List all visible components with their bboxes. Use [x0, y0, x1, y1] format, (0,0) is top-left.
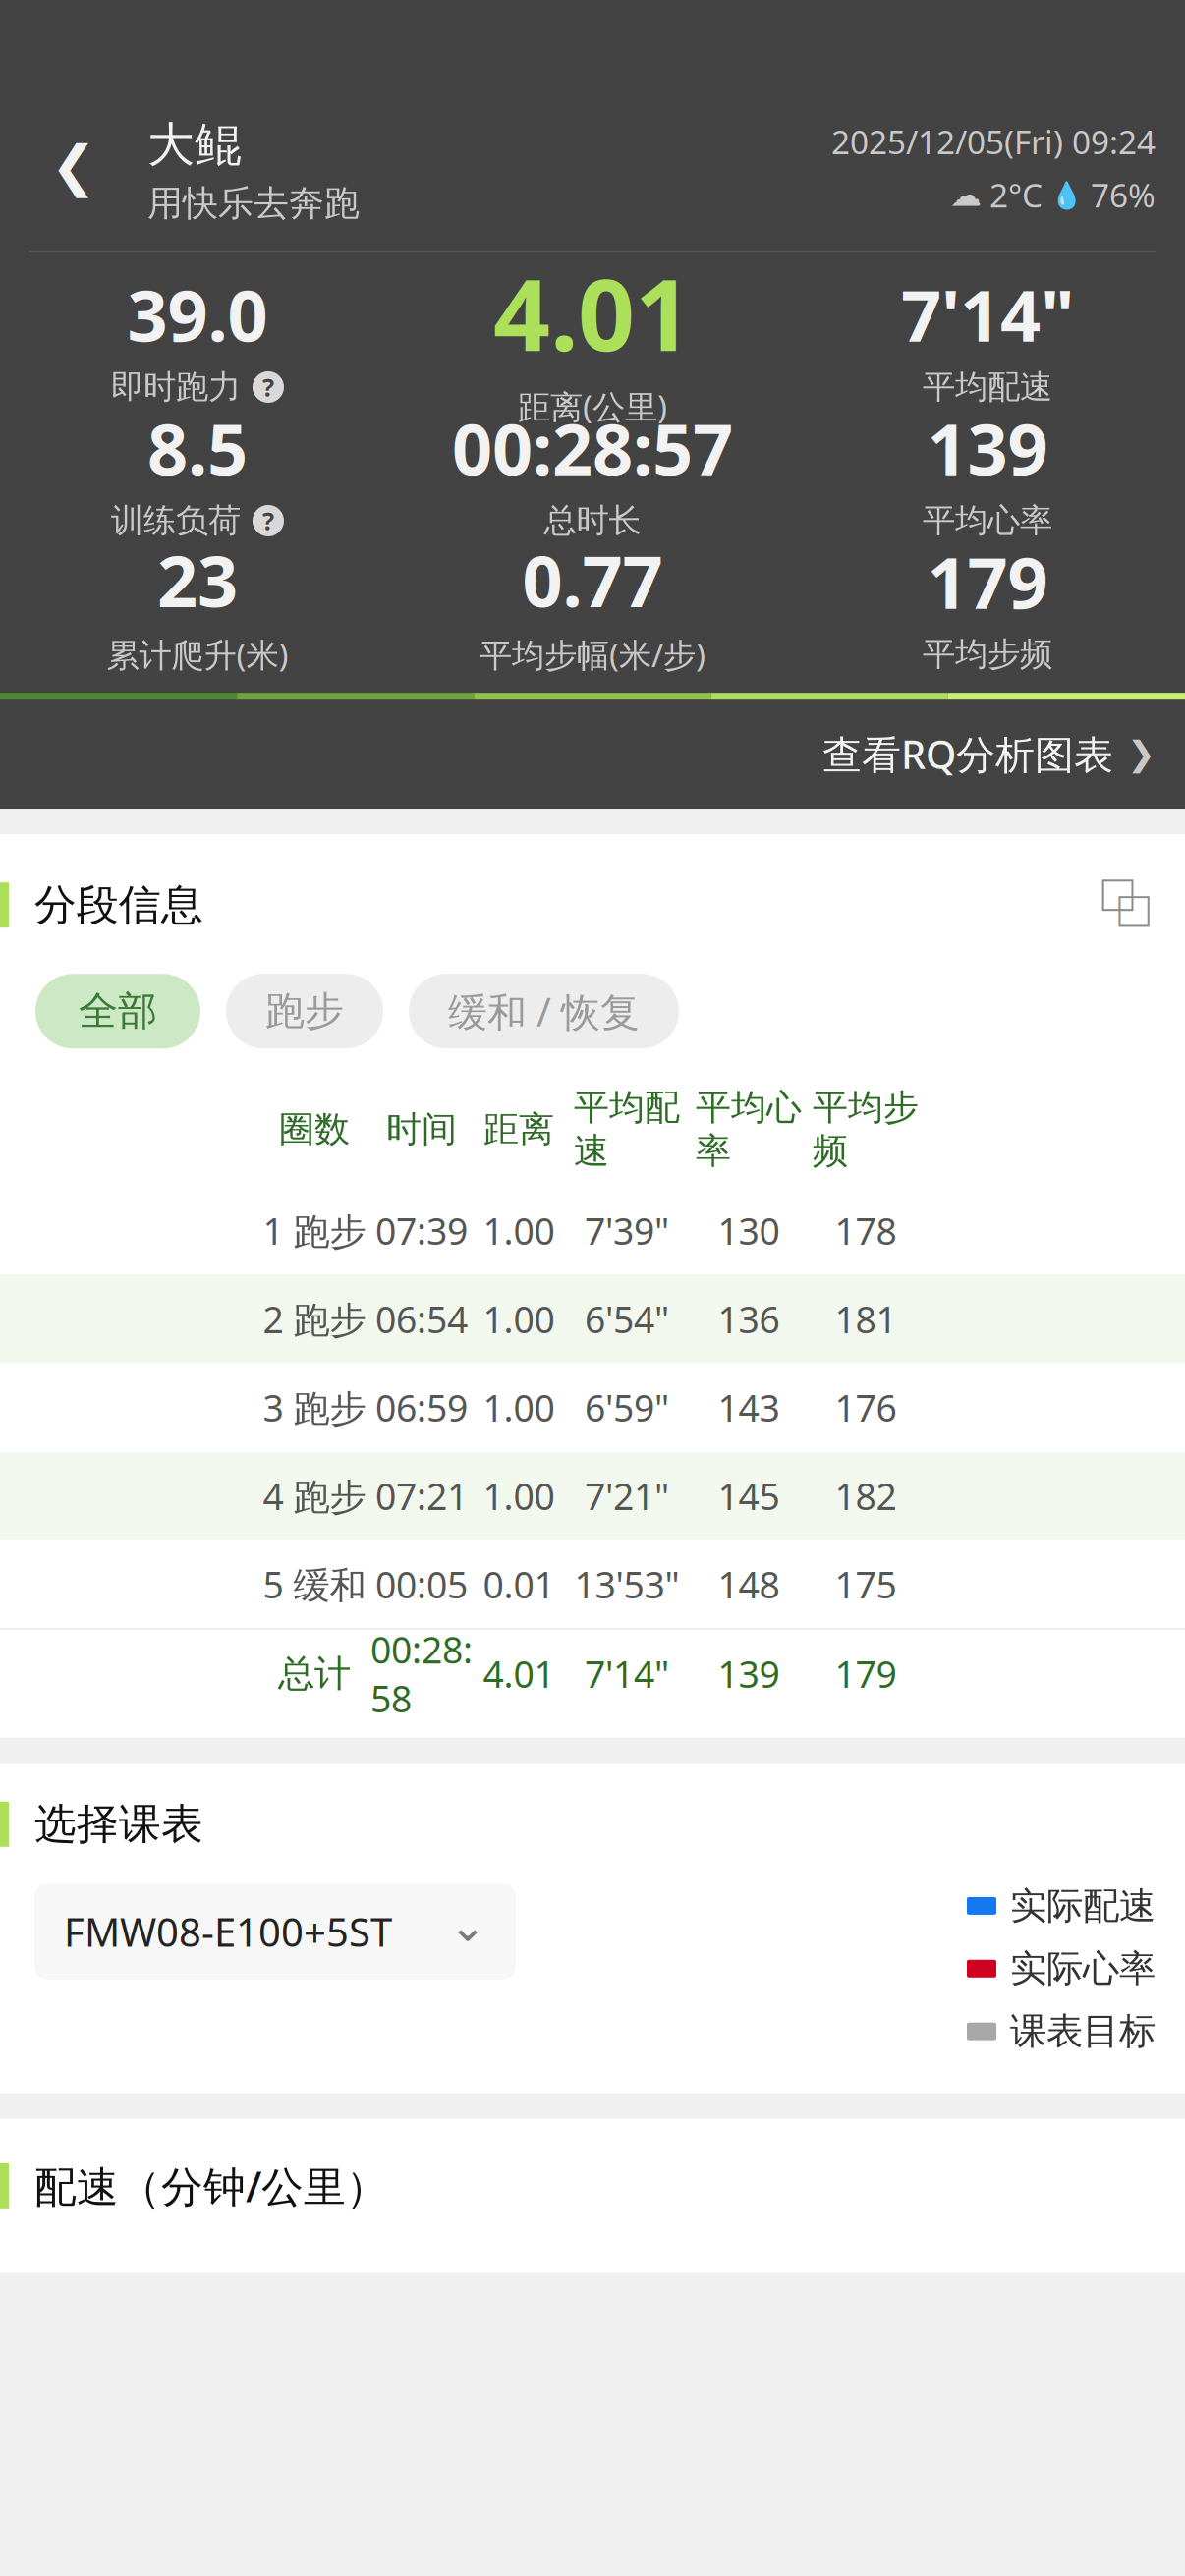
staticText: 用快乐去奔跑	[147, 182, 360, 225]
staticText: 7'14"	[585, 1649, 669, 1698]
staticText: 平均心率	[923, 501, 1052, 541]
button[interactable]: 跑步	[226, 974, 383, 1048]
staticText: ☁	[950, 177, 982, 213]
staticText: 5 缓和	[263, 1560, 366, 1609]
staticText: 分段信息	[34, 879, 203, 931]
staticText: 圈数	[279, 1108, 350, 1151]
staticText: ⧉	[1097, 872, 1155, 938]
staticText: 选择课表	[34, 1798, 203, 1850]
staticText: 配速（分钟/公里）	[34, 2158, 388, 2214]
staticText: 23	[157, 533, 238, 627]
staticText: 00:28:58	[370, 1625, 473, 1722]
staticText: 总时长	[544, 501, 641, 541]
staticText: ?	[262, 371, 274, 404]
button[interactable]: FMW08-E100+5ST	[34, 1883, 516, 1980]
staticText: 平均配速	[574, 1086, 680, 1173]
staticText: 7'21"	[585, 1472, 669, 1520]
staticText: 平均步频	[923, 634, 1052, 674]
staticText: 实际配速	[1010, 1883, 1156, 1928]
staticText: 缓和 / 恢复	[448, 985, 640, 1037]
staticText: 3 跑步	[263, 1383, 366, 1432]
staticText: 6'54"	[585, 1295, 669, 1343]
staticText: 总计	[278, 1651, 351, 1696]
staticText: 07:39	[375, 1206, 468, 1255]
staticText: 07:21	[375, 1472, 468, 1520]
staticText: 8.5	[147, 401, 248, 495]
staticText: 即时跑力	[111, 367, 241, 407]
staticText: 06:54	[375, 1295, 468, 1343]
staticText: 175	[835, 1560, 897, 1609]
staticText: 139	[927, 401, 1048, 495]
staticText: 0.01	[483, 1560, 555, 1609]
staticText: 课表目标	[1010, 2009, 1156, 2054]
staticText: 136	[718, 1295, 780, 1343]
staticText: 2°C	[989, 173, 1043, 217]
staticText: 7'14"	[901, 267, 1074, 361]
staticText: 距离	[483, 1108, 554, 1151]
staticText: ⌄	[449, 1900, 486, 1951]
staticText: 130	[718, 1206, 780, 1255]
button[interactable]: 切换视图	[1087, 870, 1165, 940]
staticText: 145	[718, 1472, 780, 1520]
staticText: 6'59"	[585, 1383, 669, 1432]
staticText: 143	[718, 1383, 780, 1432]
staticText: ?	[262, 504, 274, 537]
staticText: 2 跑步	[263, 1295, 366, 1343]
staticText: 00:05	[375, 1560, 468, 1609]
staticText: 139	[718, 1649, 780, 1698]
staticText: 平均心率	[696, 1086, 802, 1173]
button[interactable]: 查看RQ分析图表	[0, 699, 1185, 809]
staticText: 训练负荷	[111, 501, 241, 541]
staticText: 179	[927, 534, 1048, 628]
staticText: 距离(公里)	[518, 384, 667, 428]
staticText: 全部	[79, 987, 157, 1035]
staticText: 176	[835, 1383, 897, 1432]
staticText: 76%	[1091, 173, 1156, 217]
staticText: 4 跑步	[263, 1472, 366, 1520]
staticText: 1 跑步	[263, 1206, 366, 1255]
staticText: 查看RQ分析图表	[822, 728, 1113, 780]
button[interactable]: 说明	[253, 505, 284, 536]
staticText: 大鲲	[147, 116, 242, 174]
staticText: 1.00	[483, 1206, 555, 1255]
staticText: 💧	[1050, 180, 1083, 210]
button[interactable]: 缓和 / 恢复	[409, 974, 679, 1048]
button[interactable]: Back	[20, 112, 128, 220]
button[interactable]: 全部	[35, 974, 200, 1048]
staticText: 1.00	[483, 1472, 555, 1520]
staticText: 时间	[386, 1108, 457, 1151]
staticText: 实际心率	[1010, 1946, 1156, 1991]
staticText: 06:59	[375, 1383, 468, 1432]
staticText: 13'53"	[574, 1560, 679, 1609]
staticText: 跑步	[265, 987, 344, 1035]
staticText: 00:28:57	[452, 401, 733, 495]
staticText: ❯	[1127, 734, 1156, 773]
staticText: 148	[718, 1560, 780, 1609]
staticText: 平均步频	[813, 1086, 919, 1173]
staticText: 0.77	[522, 533, 663, 627]
staticText: 182	[835, 1472, 897, 1520]
staticText: 累计爬升(米)	[107, 633, 288, 676]
staticText: 2025/12/05(Fri) 09:24	[831, 120, 1156, 163]
staticText: ❮	[51, 135, 97, 197]
staticText: 1.00	[483, 1383, 555, 1432]
staticText: 4.01	[493, 246, 692, 379]
staticText: 179	[835, 1649, 897, 1698]
staticText: 7'39"	[585, 1206, 669, 1255]
staticText: 平均步幅(米/步)	[480, 633, 705, 676]
staticText: 181	[835, 1295, 897, 1343]
staticText: 平均配速	[923, 367, 1052, 407]
staticText: 178	[835, 1206, 897, 1255]
staticText: 4.01	[483, 1649, 555, 1698]
button[interactable]: 说明	[253, 371, 284, 403]
staticText: 39.0	[127, 267, 268, 361]
staticText: 1.00	[483, 1295, 555, 1343]
staticText: FMW08-E100+5ST	[64, 1905, 392, 1958]
